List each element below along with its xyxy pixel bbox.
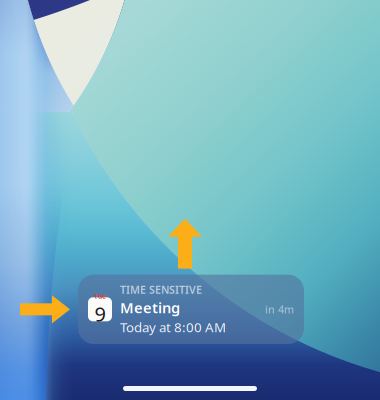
- staticText: 9: [94, 300, 105, 327]
- staticText: in 4m: [265, 302, 294, 316]
- staticText: Today at 8:00 AM: [120, 318, 226, 336]
- staticText: TIME SENSITIVE: [120, 283, 202, 297]
- staticText: Tue: [94, 292, 106, 300]
- button[interactable]: Tue: [78, 275, 304, 344]
- staticText: Meeting: [120, 298, 180, 317]
